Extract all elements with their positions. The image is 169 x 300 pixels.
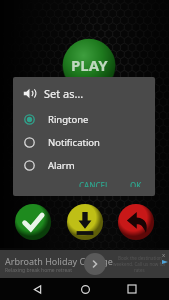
button[interactable]: Ringtone [13,108,155,131]
staticText: Arbroath Holiday Cottage [5,255,113,267]
staticText: Alarm [48,159,75,172]
staticText: CANCEL [79,180,110,187]
button[interactable]: OK [125,177,147,190]
staticText: Notification [48,136,100,149]
staticText: OK [130,180,142,187]
staticText: rates [134,267,145,273]
button[interactable]: Recent apps [121,278,143,300]
button[interactable]: Home [74,278,96,300]
button[interactable]: CANCEL [74,177,115,190]
button[interactable]: Accept [14,203,52,241]
staticText: x [162,251,166,259]
staticText: Set as… [44,86,84,101]
button[interactable]: Alarm [13,154,155,177]
button[interactable]: Open ad [84,253,106,275]
button[interactable]: Arbroath Holiday Cottage [0,250,169,278]
staticText: Ringtone [48,113,89,126]
staticText: Book the destination [118,255,162,261]
button[interactable]: Play [62,38,116,92]
button[interactable]: Notification [13,131,155,154]
staticText: weekend. Call us now for [113,261,166,267]
button[interactable]: Back [117,203,155,241]
staticText: Relaxing break home retreat [5,267,72,274]
staticText: PLAY [71,55,108,75]
button[interactable]: Download [66,203,104,241]
button[interactable]: Back [26,278,48,300]
